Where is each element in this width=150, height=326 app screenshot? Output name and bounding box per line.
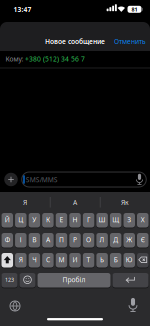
button[interactable]: Як (101, 195, 149, 210)
staticText: 13:47 (13, 5, 31, 14)
button[interactable]: Т (83, 252, 94, 268)
button[interactable]: Й (1, 212, 13, 228)
button[interactable]: И (69, 252, 81, 268)
staticText: Л (100, 235, 105, 244)
staticText: Щ (112, 215, 119, 224)
button[interactable]: Р (69, 232, 81, 248)
staticText: Ф (5, 235, 10, 244)
button[interactable]: Ж (123, 232, 135, 248)
button[interactable]: Б (110, 252, 121, 268)
staticText: 81 (131, 6, 137, 13)
staticText: Ж (126, 235, 132, 244)
staticText: Г (87, 215, 90, 224)
button[interactable]: Диктовка (135, 173, 143, 185)
staticText: Р (73, 235, 77, 244)
button[interactable]: У (29, 212, 40, 228)
staticText: Отменить (114, 37, 146, 46)
staticText: Н (72, 215, 77, 224)
staticText: SMS/MMS (26, 175, 58, 184)
button[interactable]: А (51, 195, 99, 210)
staticText: Ш (99, 215, 106, 224)
button[interactable]: Добавить вложение (4, 173, 18, 186)
staticText: Д (113, 235, 118, 244)
staticText: А (73, 198, 77, 207)
staticText: Х (141, 215, 145, 224)
button[interactable]: Отменить (86, 37, 146, 46)
staticText: Т (87, 255, 91, 264)
button[interactable]: Ч (29, 252, 40, 268)
staticText: +380 (512) 34 56 7 (25, 55, 85, 63)
staticText: Й (5, 215, 10, 224)
button[interactable]: Я (1, 195, 49, 210)
button[interactable]: І (15, 232, 27, 248)
button[interactable]: Н (69, 212, 81, 228)
button[interactable]: Ш (96, 212, 108, 228)
button[interactable]: Є (137, 232, 149, 248)
button[interactable]: Емодзі (19, 272, 35, 288)
staticText: О (86, 235, 91, 244)
staticText: Я (23, 198, 27, 207)
button[interactable]: Наступна клавіатура (10, 301, 20, 311)
button[interactable]: О (83, 232, 94, 248)
staticText: А (46, 235, 50, 244)
staticText: В (32, 235, 36, 244)
staticText: С (46, 255, 50, 264)
staticText: Є (141, 235, 145, 244)
staticText: Б (114, 255, 118, 264)
staticText: К (46, 215, 50, 224)
button[interactable]: С (42, 252, 54, 268)
button[interactable]: Ввод (112, 272, 148, 288)
button[interactable]: Я (15, 252, 27, 268)
button[interactable]: Shift (1, 252, 13, 268)
button[interactable]: 123 (1, 272, 17, 288)
staticText: І (20, 235, 22, 244)
staticText: Ю (126, 255, 133, 264)
button[interactable]: Х (137, 212, 149, 228)
button[interactable]: П (56, 232, 67, 248)
staticText: Я (19, 255, 23, 264)
button[interactable]: Д (110, 232, 121, 248)
button[interactable]: Ц (15, 212, 27, 228)
staticText: Пробіл (62, 275, 85, 284)
button[interactable]: Е (56, 212, 67, 228)
button[interactable]: Щ (110, 212, 121, 228)
button[interactable]: Удалить (137, 252, 149, 268)
button[interactable]: Ф (1, 232, 13, 248)
staticText: Ь (100, 255, 104, 264)
button[interactable]: М (56, 252, 67, 268)
button[interactable]: Л (96, 232, 108, 248)
button[interactable]: В (29, 232, 40, 248)
staticText: З (127, 215, 131, 224)
button[interactable]: Г (83, 212, 94, 228)
button[interactable]: Ю (123, 252, 135, 268)
button[interactable]: К (42, 212, 54, 228)
staticText: П (59, 235, 64, 244)
staticText: И (72, 255, 77, 264)
staticText: Ц (18, 215, 23, 224)
button[interactable]: Диктовка (128, 298, 138, 312)
staticText: Ч (32, 255, 36, 264)
staticText: М (58, 255, 64, 264)
staticText: Новое сообщение (45, 37, 105, 46)
button[interactable]: З (123, 212, 135, 228)
button[interactable]: А (42, 232, 54, 248)
button[interactable]: Ь (96, 252, 108, 268)
button[interactable]: Пробіл (37, 272, 110, 288)
staticText: У (32, 215, 36, 224)
staticText: Е (59, 215, 63, 224)
staticText: Як (121, 198, 129, 207)
staticText: Кому: (5, 55, 23, 63)
staticText: 123 (5, 276, 14, 283)
